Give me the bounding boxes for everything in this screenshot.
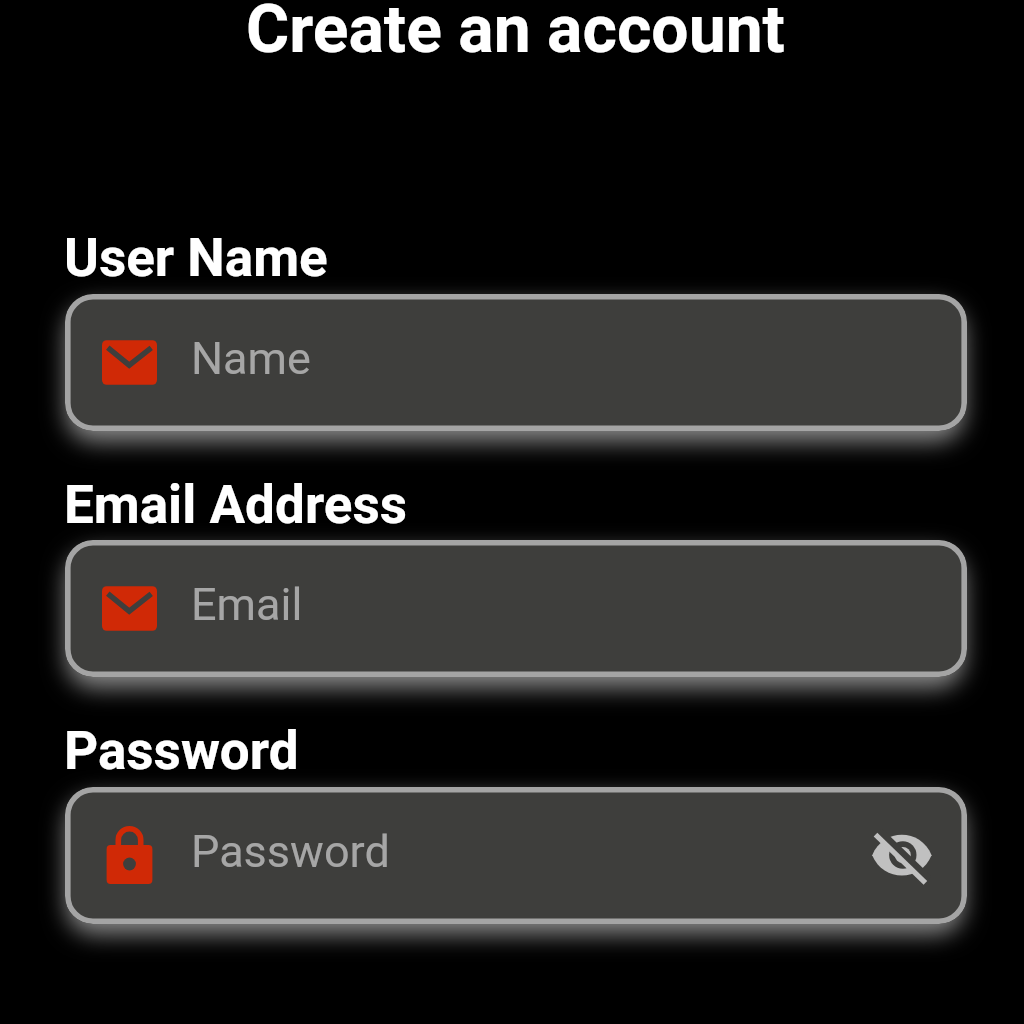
button[interactable]: Email bbox=[65, 540, 967, 677]
staticText: Password bbox=[191, 825, 390, 878]
staticText: Name bbox=[191, 332, 311, 385]
button[interactable]: Password bbox=[65, 787, 967, 924]
staticText: Email Address bbox=[64, 474, 407, 536]
button[interactable]: Name bbox=[65, 294, 967, 431]
staticText: Create an account bbox=[246, 0, 785, 68]
button[interactable]: Show password bbox=[850, 809, 954, 905]
staticText: User Name bbox=[64, 227, 328, 289]
staticText: Email bbox=[191, 578, 303, 631]
staticText: Password bbox=[64, 720, 299, 782]
